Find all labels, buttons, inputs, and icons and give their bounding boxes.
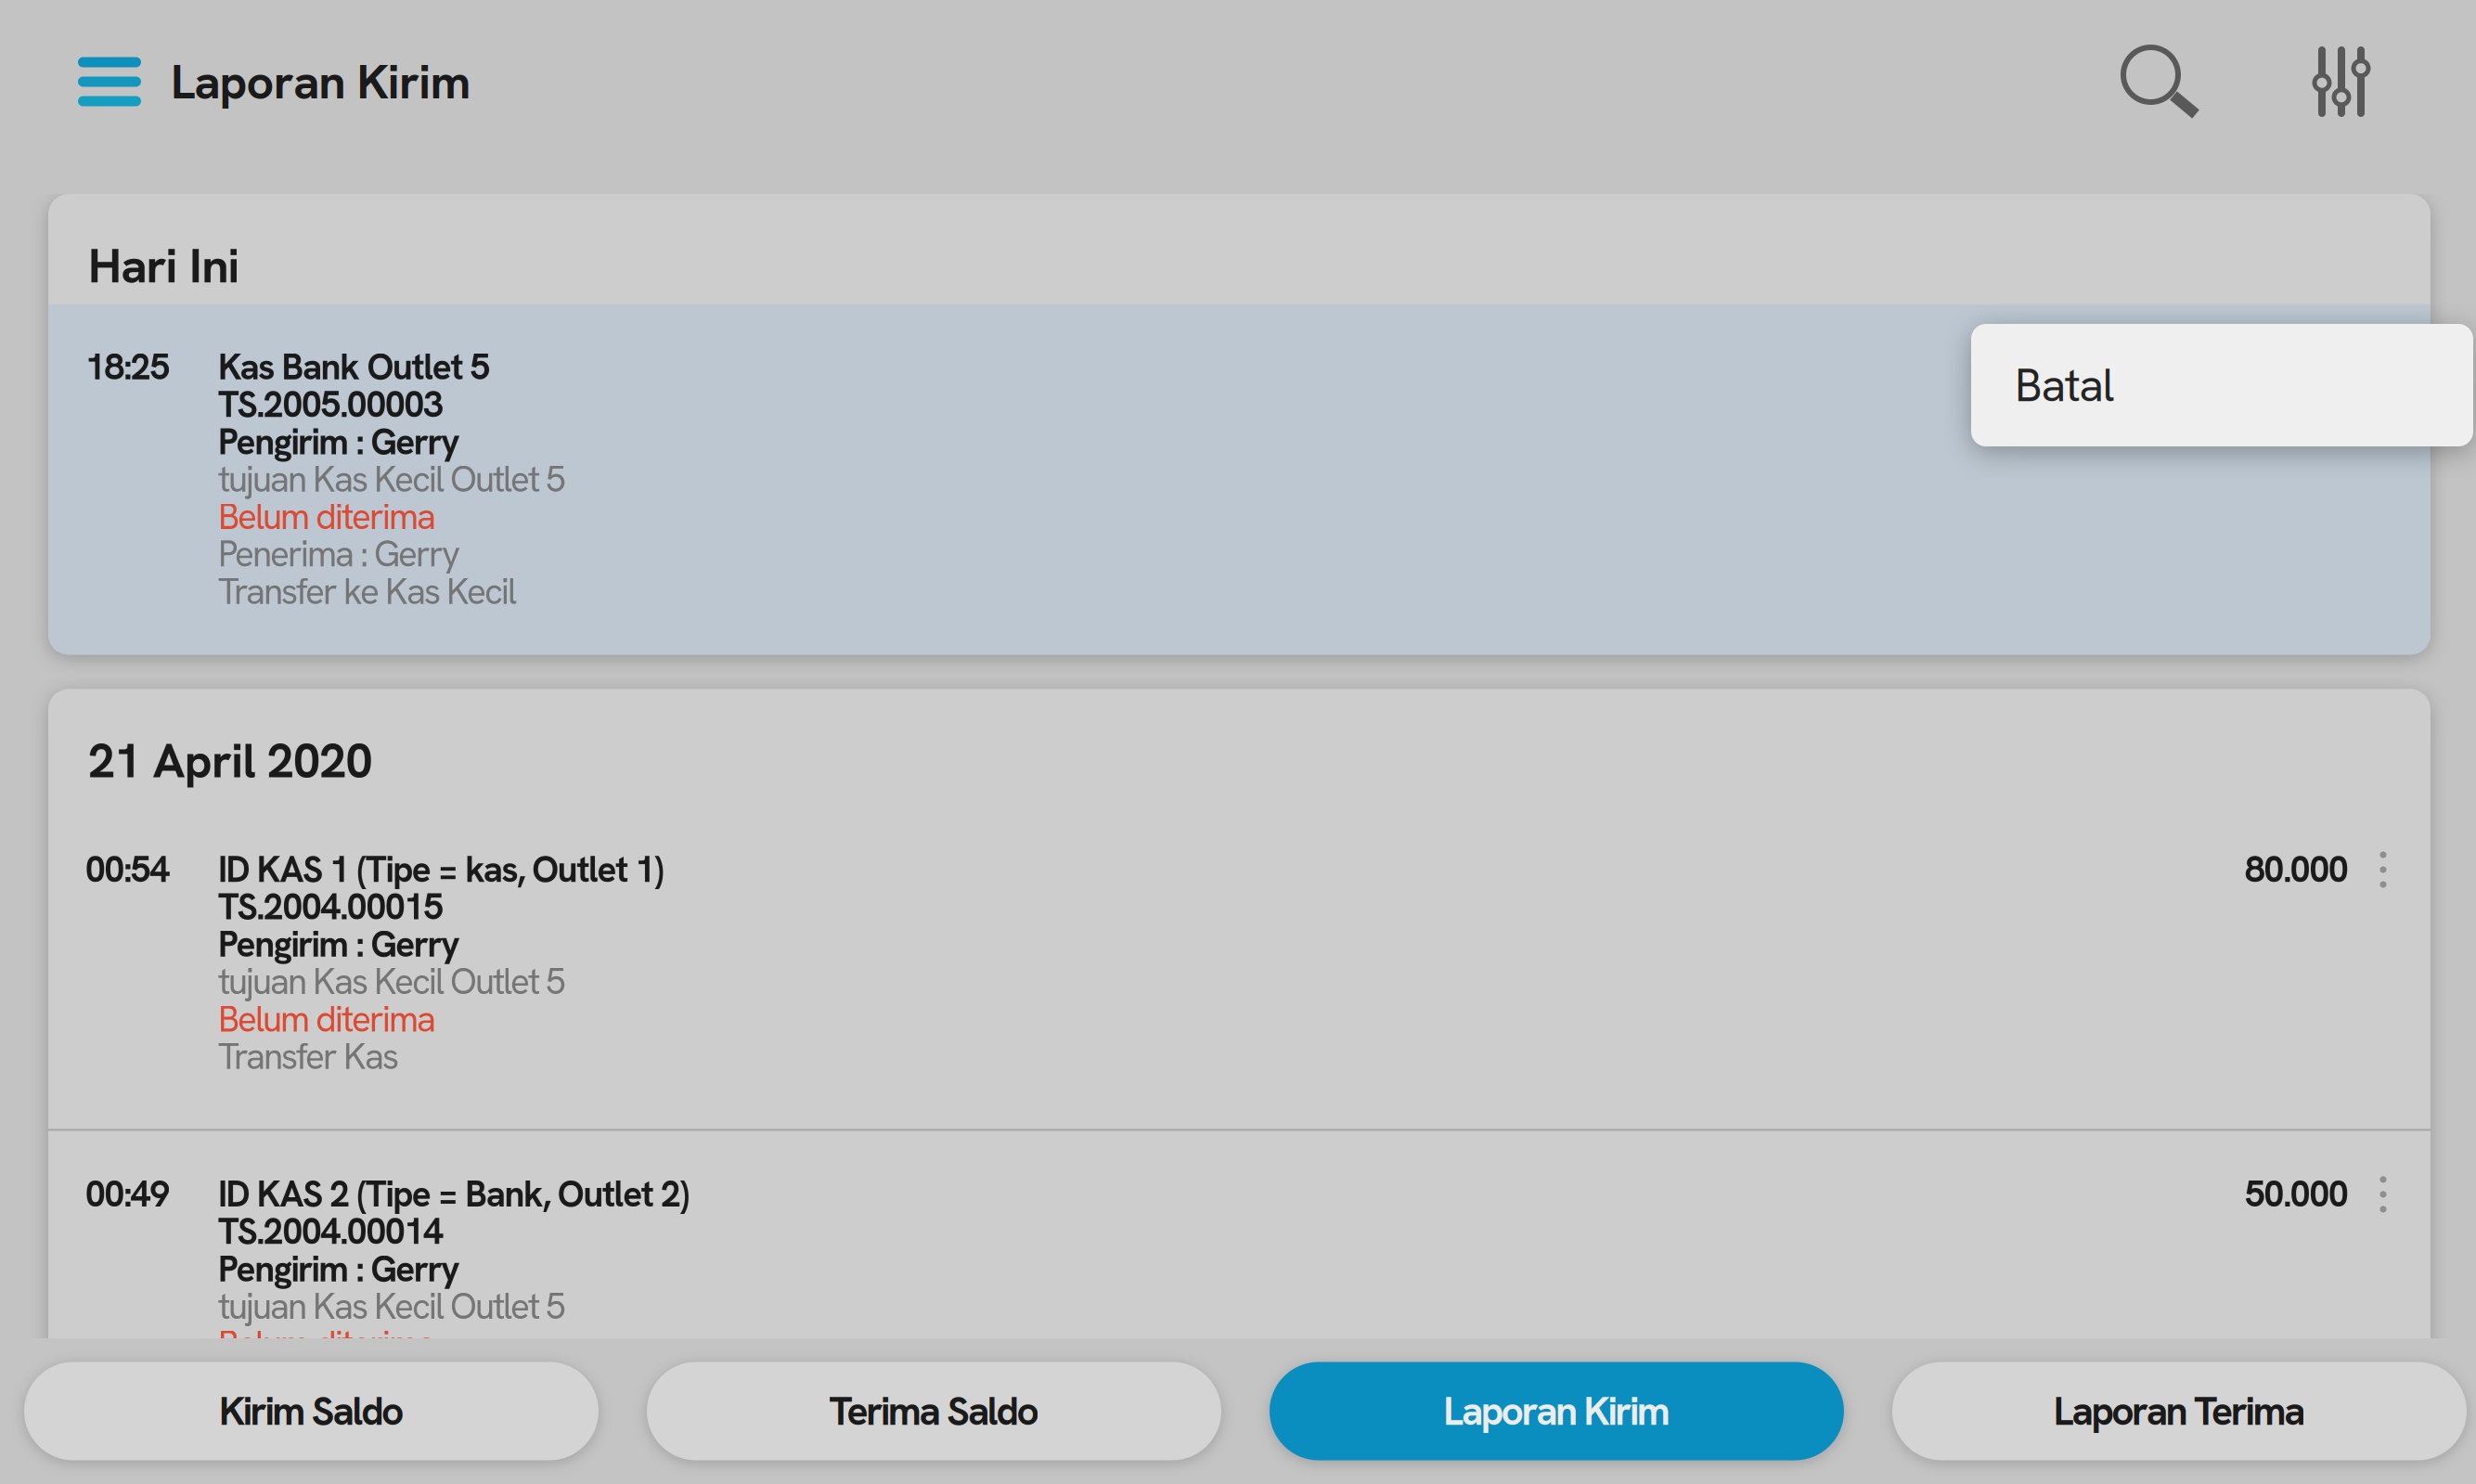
staticText: 80.000 <box>2245 851 2349 888</box>
button[interactable]: Filter <box>2268 0 2476 179</box>
staticText: 18:25 <box>85 348 170 386</box>
staticText: tujuan Kas Kecil Outlet 5 <box>218 460 566 498</box>
staticText: Hari Ini <box>88 240 240 291</box>
button[interactable]: 18:25 <box>48 305 2431 655</box>
staticText: 21 April 2020 <box>88 735 373 786</box>
button[interactable]: 00:49 <box>48 1131 2431 1446</box>
button[interactable]: Batal <box>1971 324 2473 446</box>
button[interactable]: Kirim Saldo <box>24 1362 599 1460</box>
staticText: Kas Bank Outlet 5 <box>218 348 491 386</box>
staticText: Pengirim : Gerry <box>218 925 460 963</box>
staticText: 00:49 <box>85 1175 170 1213</box>
staticText: Penerima : Gerry <box>218 535 460 573</box>
staticText: ID KAS 2 (Tipe = Bank, Outlet 2) <box>218 1175 690 1213</box>
staticText: TS.2005.00003 <box>218 386 444 423</box>
staticText: Pengirim : Gerry <box>218 1250 460 1288</box>
staticText: Transfer Kas <box>218 1362 399 1400</box>
button[interactable]: Search <box>2055 0 2268 179</box>
staticText: 00:54 <box>85 851 170 888</box>
staticText: TS.2004.00014 <box>218 1213 444 1250</box>
staticText: Terima Saldo <box>829 1391 1039 1432</box>
staticText: Belum diterima <box>218 1000 436 1038</box>
button[interactable]: Terima Saldo <box>647 1362 1221 1460</box>
staticText: 50.000 <box>2245 1175 2349 1213</box>
staticText: Laporan Kirim <box>1443 1391 1670 1432</box>
staticText: Transfer ke Kas Kecil <box>218 573 517 610</box>
button[interactable]: Laporan Terima <box>1892 1362 2467 1460</box>
button[interactable]: Menu <box>0 0 171 179</box>
staticText: Pengirim : Gerry <box>218 423 460 460</box>
staticText: ID KAS 1 (Tipe = kas, Outlet 1) <box>218 851 664 888</box>
staticText: Laporan Kirim <box>171 57 471 107</box>
staticText: Laporan Terima <box>2054 1391 2305 1432</box>
staticText: tujuan Kas Kecil Outlet 5 <box>218 1288 566 1325</box>
button[interactable]: Laporan Kirim <box>1270 1362 1844 1460</box>
staticText: Kirim Saldo <box>219 1391 404 1432</box>
staticText: tujuan Kas Kecil Outlet 5 <box>218 963 566 1000</box>
staticText: TS.2004.00015 <box>218 888 444 925</box>
staticText: Belum diterima <box>218 1325 436 1362</box>
staticText: Batal <box>2015 361 2115 409</box>
staticText: Transfer Kas <box>218 1038 399 1075</box>
button[interactable]: 00:54 <box>48 825 2431 1129</box>
staticText: Belum diterima <box>218 498 436 535</box>
